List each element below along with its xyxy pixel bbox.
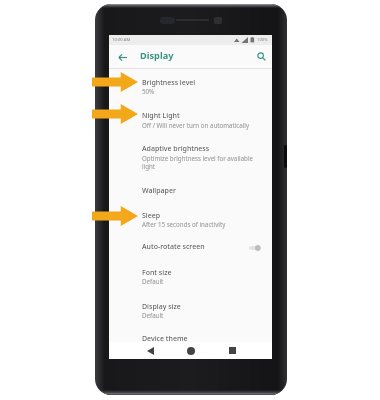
staticText: 50% [142,87,155,95]
button[interactable] [109,235,272,259]
button[interactable]: Home [183,343,199,358]
staticText: Night Light [142,111,180,121]
staticText: Off / Will never turn on automatically [142,121,250,129]
button[interactable] [109,202,272,235]
staticText: Default [142,277,164,285]
staticText: Sleep [142,211,161,221]
staticText: 10:00 AM [112,37,131,43]
staticText: Font size [142,268,172,278]
button[interactable] [109,326,272,344]
staticText: 100% [257,37,268,43]
button[interactable]: Back [116,48,129,67]
button[interactable]: Search [254,47,268,66]
staticText: Optimize brightness level for available [142,154,254,162]
staticText: Wallpaper [142,186,176,196]
staticText: Brightness level [142,78,196,88]
button[interactable]: Auto-rotate screen toggle [249,244,261,252]
button[interactable] [109,68,272,101]
button[interactable]: Back [142,343,158,358]
button[interactable] [109,259,272,292]
button[interactable] [109,292,272,326]
staticText: Display [140,49,174,62]
staticText: After 15 seconds of inactivity [142,220,226,228]
button[interactable] [109,178,272,202]
staticText: Auto-rotate screen [142,242,205,252]
button[interactable]: Recents [224,343,240,358]
button[interactable] [109,136,272,178]
button[interactable] [109,101,272,136]
staticText: Device theme [142,334,188,344]
staticText: Display size [142,302,181,312]
staticText: Adaptive brightness [142,144,210,154]
staticText: Default [142,311,164,319]
staticText: light [142,162,156,170]
